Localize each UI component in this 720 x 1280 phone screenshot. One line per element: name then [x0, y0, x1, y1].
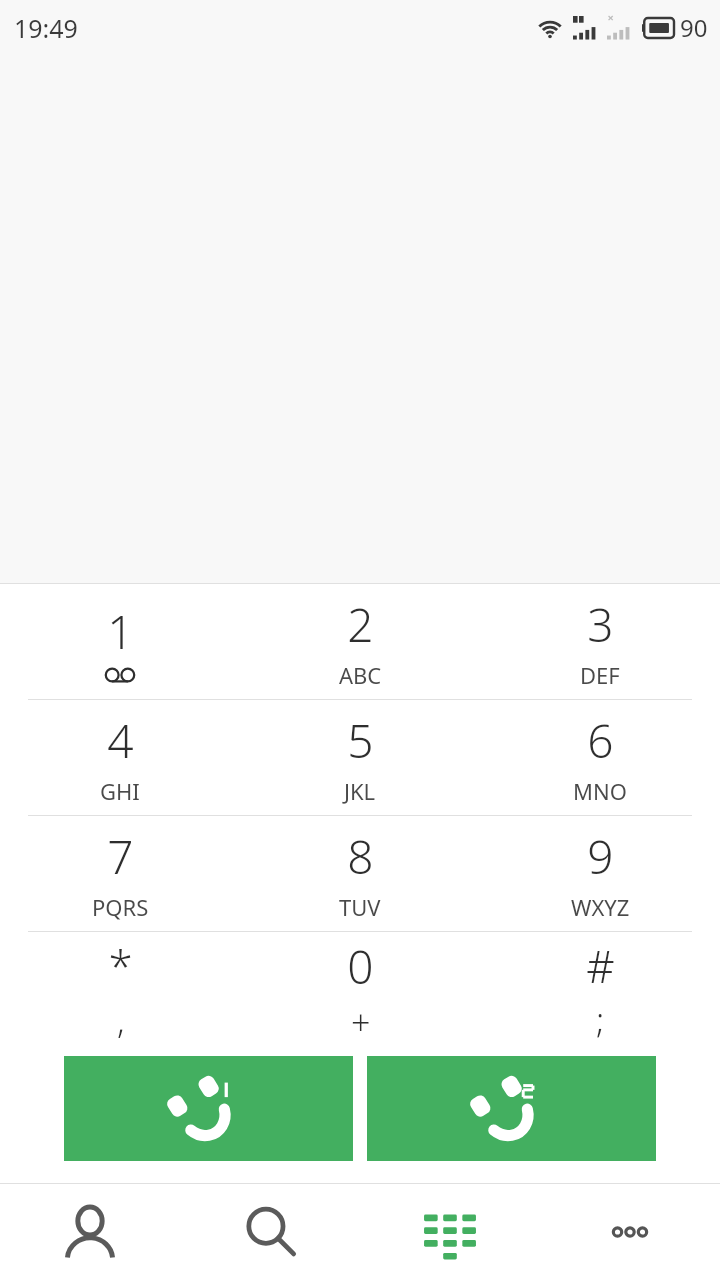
staticText: 1: [107, 600, 134, 663]
staticText: ABC: [339, 660, 382, 690]
staticText: 4: [107, 709, 134, 772]
button[interactable]: 9: [480, 816, 720, 931]
staticText: 3: [587, 593, 614, 656]
button[interactable]: 5: [240, 700, 480, 815]
button[interactable]: Contacts: [0, 1184, 180, 1280]
button[interactable]: 2: [240, 584, 480, 699]
button[interactable]: 4: [0, 700, 240, 815]
staticText: TUV: [339, 892, 381, 922]
button[interactable]: Call with SIM 1: [64, 1056, 353, 1161]
staticText: ,: [117, 997, 125, 1043]
staticText: 90: [680, 11, 708, 44]
button[interactable]: 3: [480, 584, 720, 699]
staticText: 5: [347, 709, 374, 772]
staticText: 7: [107, 825, 134, 888]
button[interactable]: Search: [180, 1184, 360, 1280]
button[interactable]: *: [0, 932, 240, 1047]
staticText: DEF: [580, 660, 620, 690]
staticText: ;: [596, 997, 605, 1043]
button[interactable]: 0: [240, 932, 480, 1047]
button[interactable]: 6: [480, 700, 720, 815]
staticText: 6: [587, 709, 614, 772]
staticText: MNO: [573, 776, 627, 806]
staticText: GHI: [100, 776, 140, 806]
button[interactable]: Call with SIM 2: [367, 1056, 656, 1161]
staticText: JKL: [344, 776, 376, 806]
staticText: 8: [347, 825, 374, 888]
button[interactable]: Dialpad: [360, 1184, 540, 1280]
staticText: *: [108, 936, 133, 996]
staticText: +: [351, 999, 371, 1045]
staticText: WXYZ: [571, 892, 630, 922]
staticText: #: [586, 936, 615, 996]
button[interactable]: More options: [540, 1184, 720, 1280]
staticText: 2: [347, 593, 374, 656]
staticText: 19:49: [14, 11, 78, 45]
staticText: PQRS: [92, 892, 149, 922]
staticText: 9: [587, 825, 614, 888]
button[interactable]: #: [480, 932, 720, 1047]
button[interactable]: 1: [0, 584, 240, 699]
button[interactable]: 8: [240, 816, 480, 931]
staticText: 0: [347, 935, 374, 998]
button[interactable]: 7: [0, 816, 240, 931]
